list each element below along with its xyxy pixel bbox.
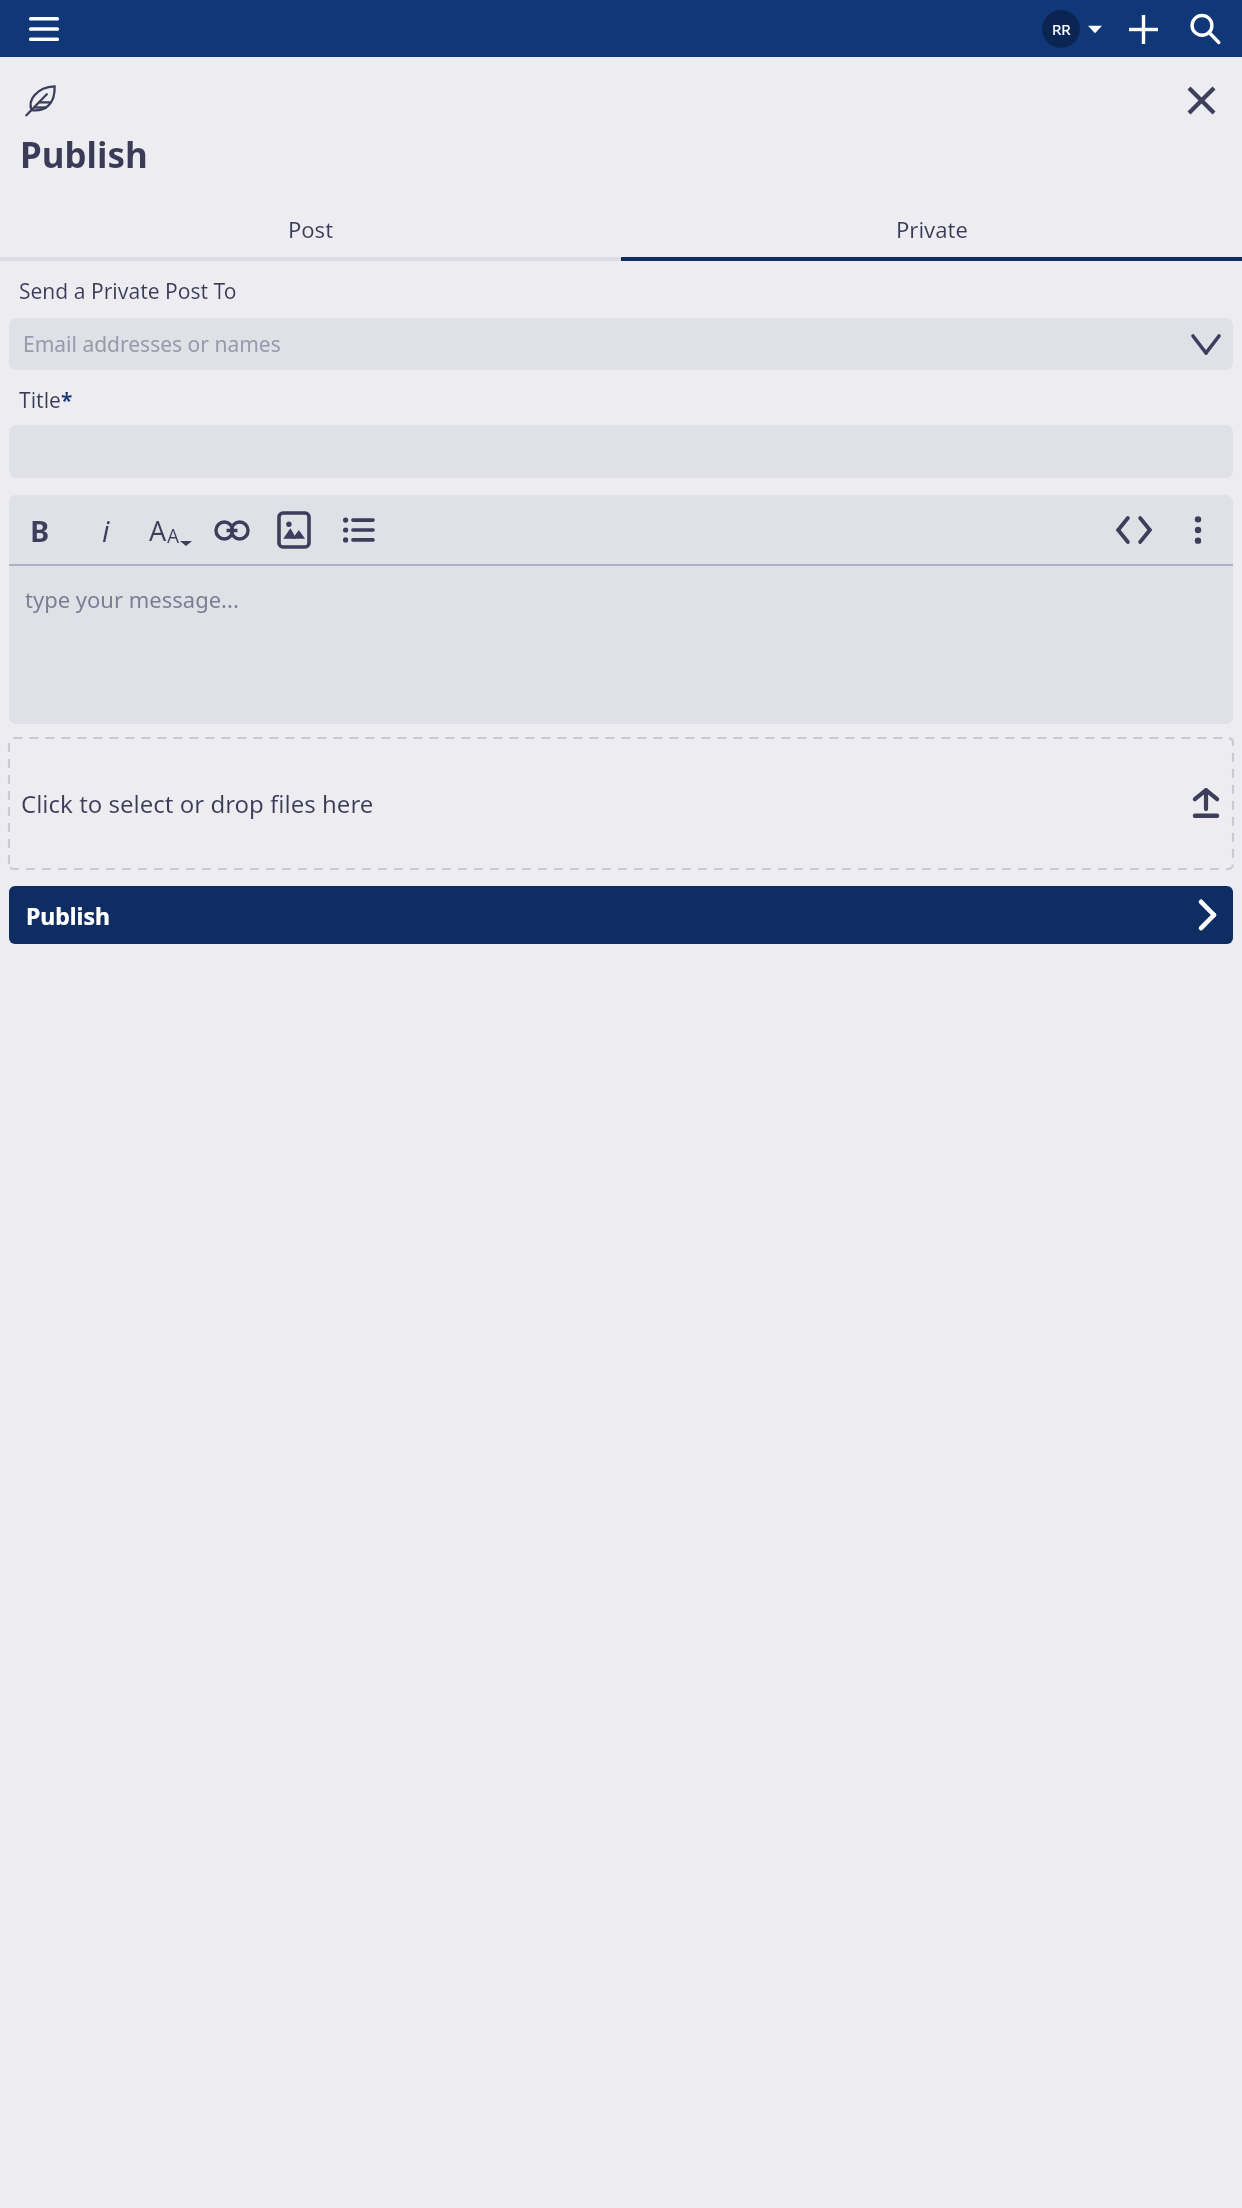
button[interactable]: Email addresses or names bbox=[9, 318, 1233, 370]
button[interactable]: Private bbox=[621, 201, 1242, 257]
staticText: Click to select or drop files here bbox=[21, 787, 374, 820]
staticText: * bbox=[61, 386, 73, 415]
button[interactable]: Bullet list bbox=[335, 500, 381, 560]
button[interactable]: type your message... bbox=[9, 566, 1233, 724]
staticText: RR bbox=[1052, 19, 1071, 39]
staticText: Send a Private Post To bbox=[19, 277, 237, 306]
staticText: Publish bbox=[20, 131, 148, 179]
staticText: i bbox=[102, 511, 110, 550]
button[interactable]: New bbox=[1120, 6, 1166, 52]
button[interactable]: Click to select or drop files here bbox=[9, 738, 1233, 869]
staticText: A bbox=[149, 512, 167, 549]
button[interactable]: Search bbox=[1182, 6, 1228, 52]
staticText: type your message... bbox=[25, 584, 239, 614]
button[interactable]: Post bbox=[0, 201, 621, 257]
button[interactable]: RR bbox=[1040, 10, 1104, 48]
button[interactable]: More options bbox=[1175, 500, 1221, 560]
staticText: Post bbox=[288, 214, 334, 244]
button[interactable]: Italic bbox=[83, 500, 129, 560]
staticText: B bbox=[30, 511, 50, 550]
staticText: Email addresses or names bbox=[23, 330, 281, 359]
button[interactable]: Close bbox=[1178, 77, 1224, 123]
staticText: A bbox=[167, 523, 180, 549]
button[interactable]: Publish bbox=[9, 886, 1233, 944]
button[interactable]: Link bbox=[209, 500, 255, 560]
button[interactable]: Compose bbox=[18, 78, 62, 122]
staticText: Publish bbox=[26, 900, 110, 931]
staticText: Title bbox=[19, 386, 61, 415]
button[interactable]: Code bbox=[1111, 500, 1157, 560]
button[interactable]: Bold bbox=[17, 500, 63, 560]
button[interactable]: Insert image bbox=[271, 500, 317, 560]
button[interactable]: Menu bbox=[20, 5, 68, 53]
staticText: Private bbox=[896, 214, 968, 244]
button[interactable]: Font size bbox=[147, 500, 193, 560]
